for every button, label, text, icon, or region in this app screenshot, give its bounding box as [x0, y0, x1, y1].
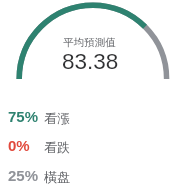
- staticText: 83.38: [62, 49, 119, 74]
- staticText: 75%: [8, 108, 39, 123]
- staticText: 0%: [8, 137, 30, 152]
- button[interactable]: 25%: [0, 167, 180, 182]
- button[interactable]: 0%: [0, 137, 180, 152]
- staticText: 看跌: [44, 139, 70, 154]
- button[interactable]: 75%: [0, 108, 180, 123]
- staticText: 看漲: [44, 110, 70, 125]
- staticText: 25%: [8, 167, 39, 182]
- staticText: 平均預測值: [63, 36, 116, 49]
- staticText: 橫盘: [44, 169, 70, 184]
